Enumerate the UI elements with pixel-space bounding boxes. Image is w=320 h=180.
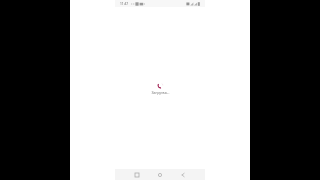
button[interactable]: Recents bbox=[126, 169, 148, 180]
staticText: 11:47 bbox=[120, 2, 129, 6]
button[interactable]: Home bbox=[148, 169, 171, 180]
button[interactable]: Back bbox=[171, 169, 194, 180]
staticText: Загрузка... bbox=[151, 90, 170, 95]
